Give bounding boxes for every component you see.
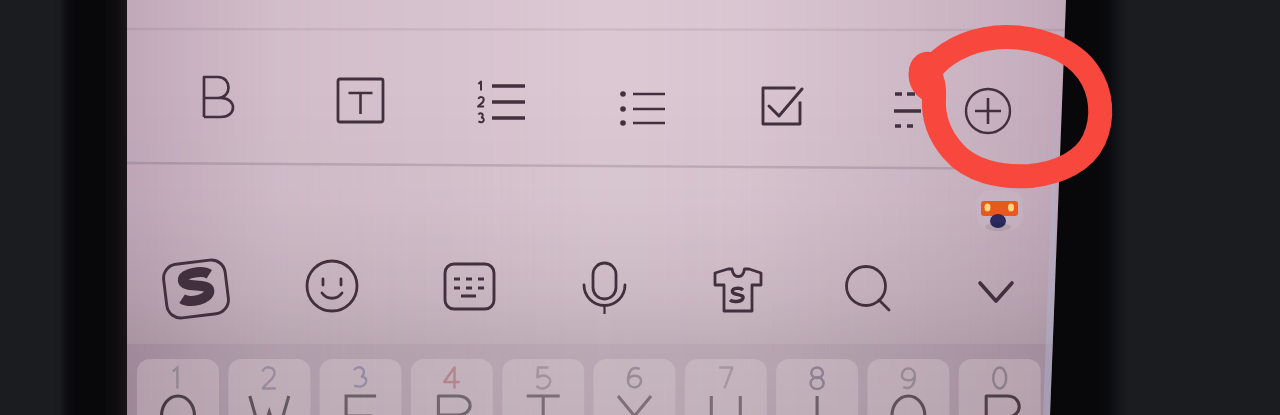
button[interactable]: Indent — [882, 58, 952, 162]
button[interactable]: Search — [828, 246, 906, 326]
button[interactable]: Bulleted list — [606, 58, 690, 162]
button[interactable]: Text style — [326, 58, 410, 162]
button[interactable]: Checklist — [744, 58, 828, 162]
button[interactable]: Numbered list — [464, 58, 548, 162]
button[interactable]: Voice input — [566, 246, 644, 326]
button[interactable]: Collapse keyboard — [958, 246, 1036, 326]
button[interactable]: Emoji — [294, 246, 372, 326]
button[interactable]: Bold — [192, 58, 276, 162]
button[interactable]: Stickers — [430, 246, 508, 326]
button[interactable]: Add — [952, 62, 1028, 158]
button[interactable]: Themes — [700, 246, 778, 326]
button[interactable]: SwiftKey menu — [158, 246, 236, 326]
